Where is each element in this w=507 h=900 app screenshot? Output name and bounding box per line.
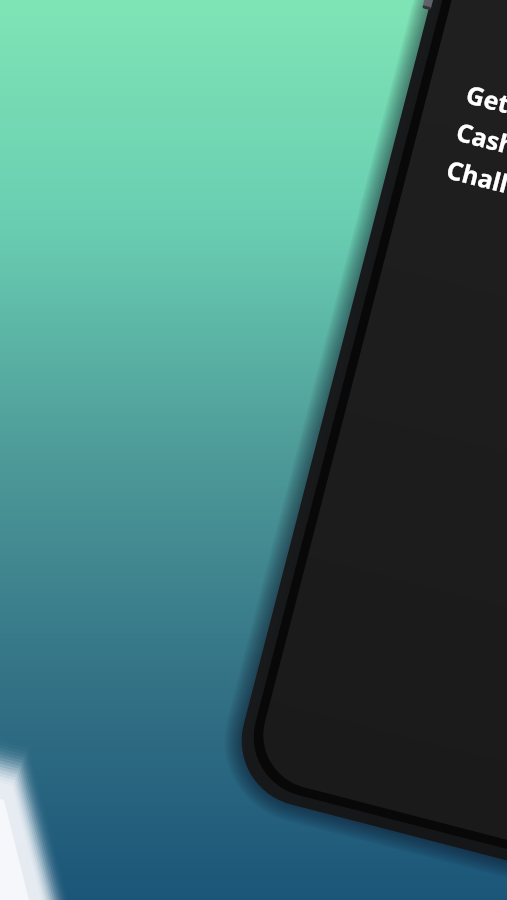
button[interactable]: Phone mockup promo screen <box>0 0 507 900</box>
